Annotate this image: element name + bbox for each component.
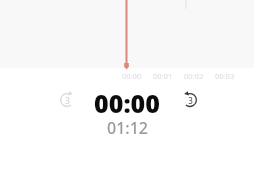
button[interactable]: Forward 3 seconds xyxy=(180,90,200,110)
staticText: 00:00 xyxy=(122,71,142,81)
staticText: 3 xyxy=(65,95,70,106)
staticText: 00:03 xyxy=(215,71,235,81)
button[interactable] xyxy=(0,0,254,68)
staticText: 00:01 xyxy=(153,71,173,81)
staticText: 3 xyxy=(188,95,193,106)
staticText: 00:00 xyxy=(94,86,160,115)
staticText: 01:12 xyxy=(107,117,148,137)
button[interactable]: Rewind 3 seconds xyxy=(57,90,77,110)
button[interactable]: 00:00 xyxy=(84,86,170,115)
staticText: 00:02 xyxy=(184,71,204,81)
